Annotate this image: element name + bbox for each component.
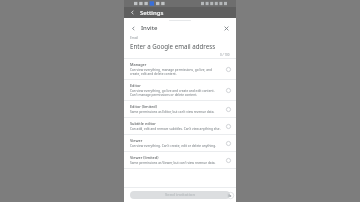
- button[interactable]: Select Viewer: [224, 139, 232, 147]
- staticText: Same permissions as Editor, but can't vi…: [130, 110, 215, 114]
- button[interactable]: Select Subtitle editor: [224, 122, 232, 130]
- staticText: Viewer (limited): [130, 155, 159, 160]
- staticText: Can view everything, manage permissions,…: [130, 68, 221, 76]
- button[interactable]: Viewer (limited): [124, 152, 236, 168]
- staticText: Manager: [130, 62, 147, 67]
- staticText: Email: [130, 36, 139, 40]
- button[interactable]: Select Editor: [224, 86, 232, 94]
- button[interactable]: Back: [129, 24, 138, 33]
- button[interactable]: Watermark: [226, 191, 234, 199]
- staticText: Invite: [141, 24, 158, 32]
- staticText: Can add, edit and remove subtitles. Can'…: [130, 127, 221, 131]
- button[interactable]: Back: [128, 8, 137, 17]
- button[interactable]: Viewer: [124, 135, 236, 151]
- staticText: Editor: [130, 83, 141, 88]
- staticText: Can view everything. Can't create, edit …: [130, 144, 217, 148]
- staticText: Subtitle editor: [130, 121, 156, 126]
- staticText: 0 / 100: [220, 53, 230, 57]
- button[interactable]: Close: [221, 23, 231, 33]
- button[interactable]: Send invitation: [130, 191, 230, 199]
- button[interactable]: Editor: [124, 80, 236, 100]
- button[interactable]: Manager: [124, 59, 236, 79]
- staticText: Settings: [140, 9, 164, 17]
- button[interactable]: Select Viewer (limited): [224, 156, 232, 164]
- staticText: Viewer: [130, 138, 143, 143]
- button[interactable]: Subtitle editor: [124, 118, 236, 134]
- button[interactable]: Select Manager: [224, 65, 232, 73]
- staticText: Send invitation: [165, 192, 196, 198]
- button[interactable]: Select Editor (limited): [224, 105, 232, 113]
- staticText: Editor (limited): [130, 104, 157, 109]
- staticText: Same permissions as Viewer, but can't vi…: [130, 161, 216, 165]
- button[interactable]: Editor (limited): [124, 101, 236, 117]
- staticText: Enter a Google email address: [130, 42, 216, 50]
- staticText: Can view everything, go live and create …: [130, 89, 221, 97]
